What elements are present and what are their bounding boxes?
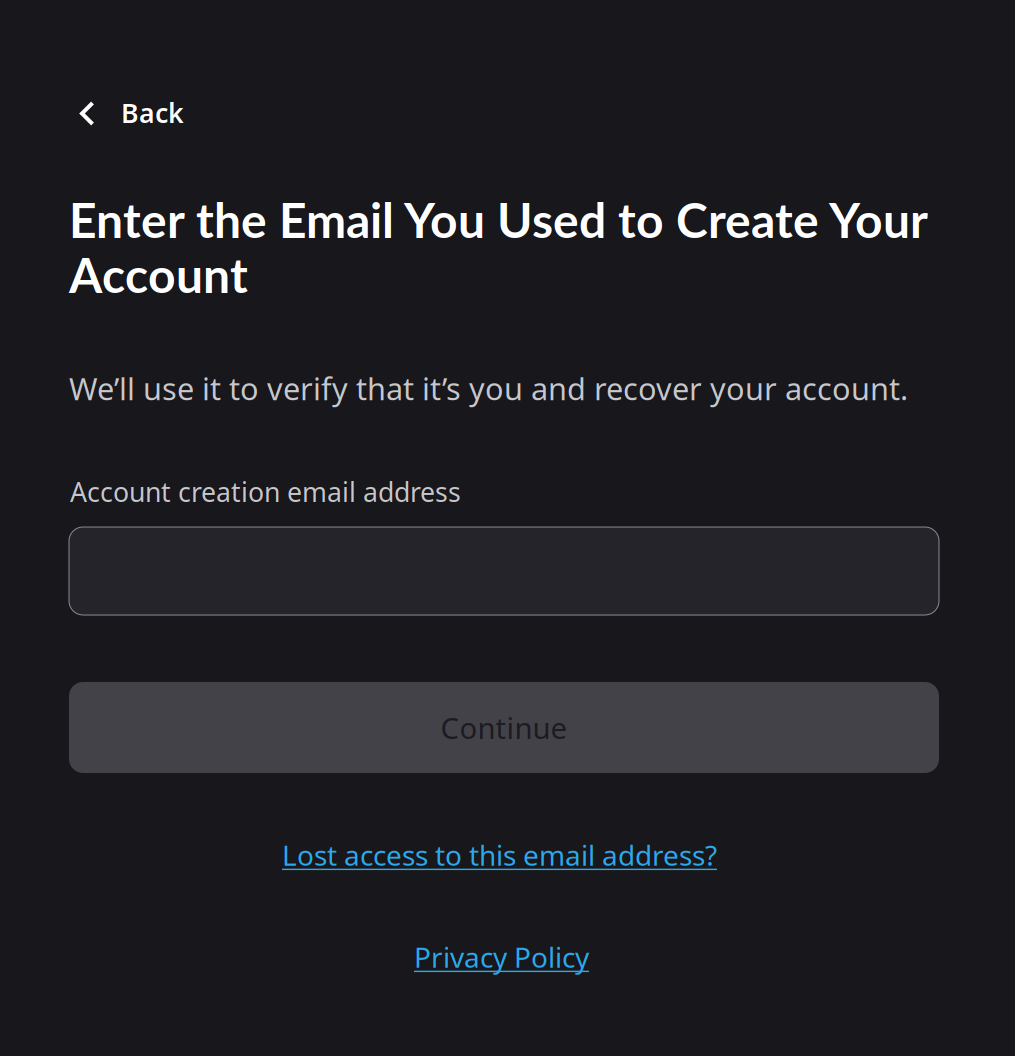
staticText: We’ll use it to verify that it’s you and… xyxy=(69,368,908,409)
staticText: Enter the Email You Used to Create Your … xyxy=(69,192,928,302)
button[interactable]: Account creation email address xyxy=(69,527,939,615)
staticText: Continue xyxy=(440,708,567,747)
button[interactable]: Continue xyxy=(69,682,939,773)
button[interactable]: Lost access to this email address? xyxy=(282,832,742,878)
staticText: Lost access to this email address? xyxy=(282,836,717,874)
button[interactable]: Back xyxy=(62,77,242,139)
staticText: Privacy Policy xyxy=(414,938,589,976)
staticText: Back xyxy=(121,95,184,130)
staticText: Account creation email address xyxy=(70,474,461,509)
button[interactable]: Privacy Policy xyxy=(414,934,604,980)
